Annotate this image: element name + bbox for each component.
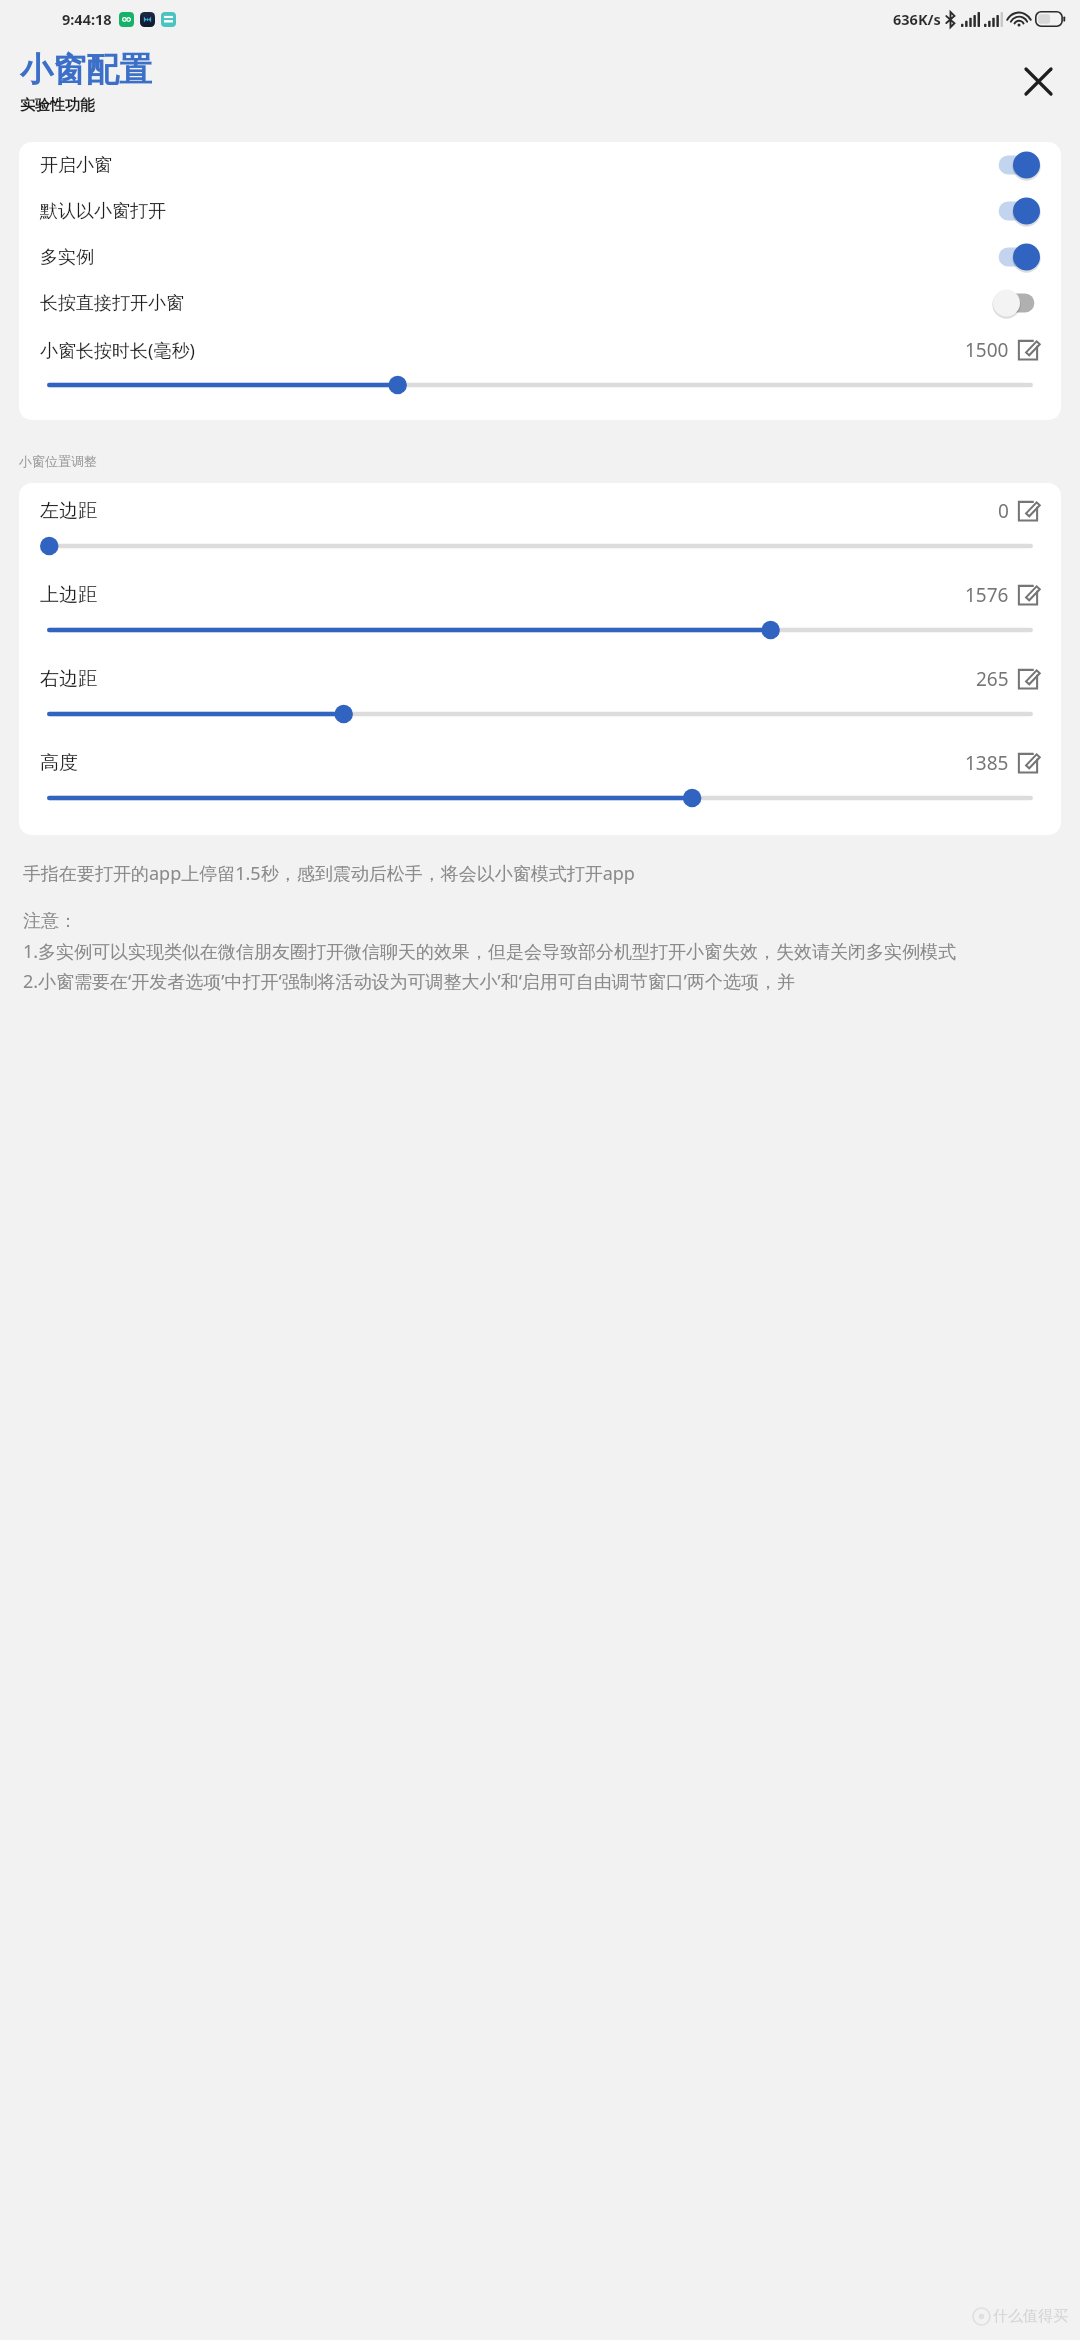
staticText: 0	[998, 498, 1009, 524]
staticText: 1500	[965, 337, 1009, 363]
staticText: 小窗配置	[20, 49, 152, 91]
staticText: 手指在要打开的app上停留1.5秒，感到震动后松手，将会以小窗模式打开app	[23, 861, 635, 886]
staticText: 长按直接打开小窗	[40, 292, 993, 315]
button[interactable]: 1576	[965, 582, 1040, 608]
staticText: 1576	[965, 582, 1009, 608]
button[interactable]: 1385	[965, 750, 1040, 776]
button[interactable]: 默认以小窗打开	[40, 188, 1040, 234]
button[interactable]: 多实例	[40, 234, 1040, 280]
button[interactable]: Close	[1010, 53, 1066, 109]
button[interactable]: 0	[998, 498, 1040, 524]
staticText: 默认以小窗打开	[40, 200, 993, 223]
button[interactable]: 长按直接打开小窗	[40, 280, 1040, 326]
staticText: 265	[976, 666, 1009, 692]
staticText: 注意： 1.多实例可以实现类似在微信朋友圈打开微信聊天的效果，但是会导致部分机型…	[23, 910, 957, 993]
staticText: 开启小窗	[40, 154, 993, 177]
other: Edit 上边距	[1016, 583, 1040, 607]
button[interactable]: 1500	[965, 337, 1040, 363]
other: Edit 高度	[1016, 751, 1040, 775]
staticText: 多实例	[40, 246, 993, 269]
other: Edit 右边距	[1016, 667, 1040, 691]
staticText: 小窗位置调整	[19, 453, 97, 469]
staticText: 636K/s	[893, 9, 941, 29]
button[interactable]: 开启小窗	[40, 142, 1040, 188]
staticText: 实验性功能	[20, 96, 95, 115]
other: Edit 小窗长按时长(毫秒)	[1016, 338, 1040, 362]
staticText: 小窗长按时长(毫秒)	[40, 338, 965, 363]
staticText: 上边距	[40, 583, 965, 607]
staticText: 高度	[40, 751, 965, 775]
button[interactable]: 265	[976, 666, 1040, 692]
staticText: 9:44:18	[62, 9, 112, 29]
staticText: 什么值得买	[993, 2307, 1068, 2326]
staticText: 左边距	[40, 499, 998, 523]
other: Edit 左边距	[1016, 499, 1040, 523]
staticText: 1385	[965, 750, 1009, 776]
staticText: 右边距	[40, 667, 976, 691]
